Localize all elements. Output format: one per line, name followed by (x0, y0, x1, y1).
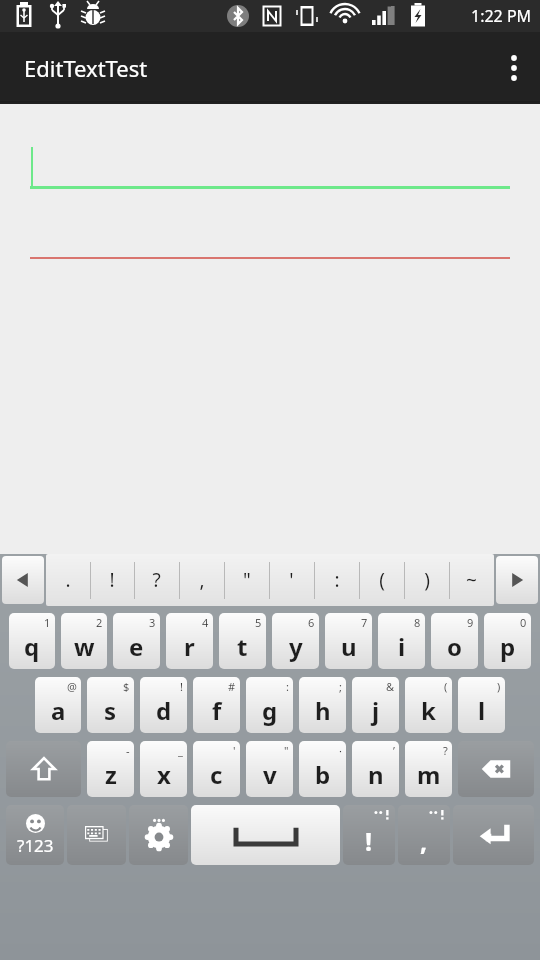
staticText: b (315, 758, 331, 791)
button[interactable]: ; (299, 677, 346, 733)
staticText: d (156, 694, 172, 727)
button[interactable]: ! (140, 677, 187, 733)
staticText: : (334, 567, 340, 593)
staticText: $ (123, 679, 130, 694)
staticText: 3 (149, 615, 156, 630)
staticText: _ (178, 743, 183, 758)
staticText: i (398, 630, 406, 663)
staticText: w (74, 630, 95, 663)
staticText: o (447, 630, 462, 663)
button[interactable]: ' (269, 554, 314, 606)
button[interactable]: ! (343, 805, 395, 865)
button[interactable]: @ (35, 677, 81, 733)
staticText: : (286, 679, 289, 694)
button[interactable]: 7 (325, 613, 372, 669)
button[interactable]: Shift (6, 741, 81, 797)
staticText: x (157, 758, 171, 791)
staticText: ! (109, 567, 115, 593)
button[interactable]: " (246, 741, 293, 797)
staticText: & (386, 679, 395, 694)
button[interactable]: : (314, 554, 359, 606)
button[interactable]: # (193, 677, 240, 733)
staticText: , (199, 567, 205, 593)
staticText: ~ (466, 567, 477, 593)
button[interactable]: Text field (30, 214, 510, 259)
staticText: 8 (414, 615, 421, 630)
button[interactable]: _ (140, 741, 187, 797)
button[interactable]: · (299, 741, 346, 797)
staticText: y (289, 630, 303, 663)
staticText: m (417, 758, 441, 791)
staticText: t (237, 630, 248, 663)
staticText: u (341, 630, 357, 663)
button[interactable]: 6 (272, 613, 319, 669)
button[interactable]: & (352, 677, 399, 733)
staticText: j (372, 694, 380, 727)
button[interactable]: Settings (129, 805, 188, 865)
button[interactable]: . (46, 554, 90, 606)
button[interactable]: 5 (219, 613, 266, 669)
staticText: 6 (308, 615, 315, 630)
button[interactable]: ( (359, 554, 404, 606)
button[interactable]: 9 (431, 613, 478, 669)
staticText: c (210, 758, 223, 791)
staticText: s (104, 694, 117, 727)
staticText: ( (444, 679, 448, 694)
button[interactable]: $ (87, 677, 134, 733)
button[interactable]: ' (193, 741, 240, 797)
staticText: 1:22 PM (471, 5, 532, 27)
button[interactable]: Space (191, 805, 340, 865)
button[interactable]: : (246, 677, 293, 733)
staticText: l (478, 694, 486, 727)
button[interactable]: ~ (449, 554, 494, 606)
staticText: ’ (393, 743, 395, 758)
button[interactable]: 4 (166, 613, 213, 669)
button[interactable]: More options (488, 32, 540, 104)
staticText: 4 (202, 615, 209, 630)
staticText: ) (497, 679, 501, 694)
button[interactable]: 8 (378, 613, 425, 669)
button[interactable]: 2 (61, 613, 107, 669)
staticText: ' (289, 567, 294, 593)
staticText: ) (424, 567, 430, 593)
button[interactable]: - (87, 741, 134, 797)
button[interactable]: 0 (484, 613, 531, 669)
staticText: 5 (255, 615, 262, 630)
button[interactable]: ? (134, 554, 179, 606)
button[interactable]: Backspace (458, 741, 534, 797)
staticText: 1 (44, 615, 51, 630)
button[interactable]: , (398, 805, 450, 865)
staticText: e (129, 630, 144, 663)
button[interactable]: Previous (2, 556, 44, 604)
staticText: r (184, 630, 195, 663)
staticText: f (212, 694, 222, 727)
button[interactable]: ’ (352, 741, 399, 797)
button[interactable]: ( (405, 677, 452, 733)
button[interactable]: Switch keyboard (67, 805, 126, 865)
staticText: ; (339, 679, 342, 694)
staticText: @ (67, 679, 77, 694)
button[interactable]: " (224, 554, 269, 606)
staticText: ! (180, 679, 183, 694)
button[interactable]: ) (458, 677, 505, 733)
button[interactable]: ! (90, 554, 134, 606)
button[interactable]: 1 (9, 613, 55, 669)
staticText: g (262, 694, 278, 727)
staticText: q (24, 630, 40, 663)
button[interactable]: 3 (113, 613, 160, 669)
staticText: 7 (361, 615, 368, 630)
staticText: 0 (520, 615, 527, 630)
button[interactable]: ? (405, 741, 452, 797)
staticText: z (105, 758, 117, 791)
staticText: n (368, 758, 384, 791)
staticText: 9 (467, 615, 474, 630)
button[interactable]: Next (496, 556, 538, 604)
button[interactable]: , (179, 554, 224, 606)
button[interactable]: Symbols (6, 805, 64, 865)
button[interactable]: Text field, focused (30, 144, 510, 189)
button[interactable]: Enter (453, 805, 534, 865)
button[interactable]: ) (404, 554, 449, 606)
staticText: k (421, 694, 436, 727)
staticText: p (500, 630, 516, 663)
staticText: a (51, 694, 66, 727)
